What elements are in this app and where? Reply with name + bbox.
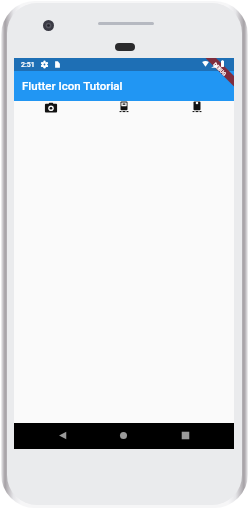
button[interactable]: Camera — [44, 101, 58, 115]
staticText: Flutter Icon Tutorial — [22, 79, 123, 92]
button[interactable]: Back — [58, 431, 67, 440]
button[interactable]: Camera rear — [117, 101, 131, 115]
button[interactable]: Recents — [181, 431, 190, 440]
button[interactable]: Home — [119, 431, 128, 440]
staticText: 2:51 — [21, 61, 35, 69]
staticText: DEBUG — [212, 61, 228, 77]
button[interactable]: Camera front — [190, 101, 204, 115]
